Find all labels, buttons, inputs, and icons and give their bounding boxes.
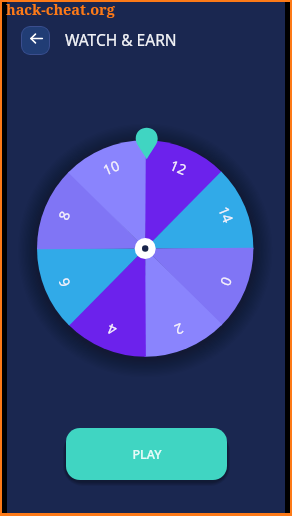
staticText: PLAY — [132, 446, 162, 463]
button[interactable]: PLAY — [66, 428, 227, 480]
button[interactable]: Spin the wheel — [23, 122, 268, 374]
staticText: hack-cheat.org — [6, 0, 115, 19]
staticText: WATCH & EARN — [65, 29, 177, 50]
button[interactable]: Back — [21, 26, 50, 55]
